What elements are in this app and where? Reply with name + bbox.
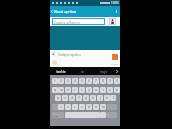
button[interactable]: z xyxy=(58,104,64,110)
button[interactable]: Emoji xyxy=(52,60,57,65)
button[interactable]: tenhle xyxy=(50,70,72,74)
staticText: Nová zpráva xyxy=(54,9,76,14)
button[interactable]: moje xyxy=(93,70,114,74)
staticText: e xyxy=(67,88,69,92)
button[interactable]: y xyxy=(86,87,92,93)
button[interactable]: 3 xyxy=(65,78,71,84)
staticText: q xyxy=(54,88,56,92)
button[interactable]: h xyxy=(90,95,96,101)
button[interactable]: i xyxy=(100,87,106,93)
button[interactable]: q xyxy=(52,87,58,93)
button[interactable]: n xyxy=(93,104,99,110)
staticText: k xyxy=(106,96,108,100)
staticText: l xyxy=(113,96,114,100)
button[interactable]: j xyxy=(97,95,103,101)
staticText: 4 xyxy=(74,79,76,83)
staticText: p xyxy=(116,88,118,92)
staticText: v xyxy=(81,105,83,109)
button[interactable]: l xyxy=(110,95,116,101)
button[interactable]: . xyxy=(100,112,106,118)
staticText: Sym xyxy=(53,114,58,117)
button[interactable]: o xyxy=(107,87,113,93)
button[interactable]: Back xyxy=(50,6,76,17)
button[interactable]: e xyxy=(65,87,71,93)
button[interactable]: d xyxy=(69,95,75,101)
staticText: 13:05 xyxy=(111,1,119,5)
staticText: . xyxy=(103,113,104,117)
staticText: c xyxy=(74,105,76,109)
staticText: u xyxy=(95,88,97,92)
staticText: b xyxy=(88,105,90,109)
staticText: o xyxy=(109,88,111,92)
staticText: g xyxy=(85,96,87,100)
button[interactable]: 8 xyxy=(100,78,106,84)
button[interactable]: s xyxy=(62,95,68,101)
staticText: j xyxy=(100,96,101,100)
staticText: 6 xyxy=(88,79,90,83)
button[interactable]: u xyxy=(93,87,99,93)
staticText: n xyxy=(95,105,97,109)
button[interactable]: 7 xyxy=(93,78,99,84)
button[interactable]: 2 xyxy=(58,78,64,84)
staticText: 8 xyxy=(102,79,104,83)
button[interactable]: Zadejte příjemce xyxy=(52,18,105,25)
button[interactable]: 5 xyxy=(79,78,85,84)
staticText: d xyxy=(71,96,73,100)
button[interactable]: v xyxy=(79,104,85,110)
button[interactable]: 4 xyxy=(72,78,78,84)
button[interactable]: Send xyxy=(112,54,118,60)
staticText: w xyxy=(60,88,63,92)
button[interactable]: a xyxy=(55,95,61,101)
button[interactable]: 9 xyxy=(107,78,113,84)
staticText: s xyxy=(64,96,66,100)
staticText: 9 xyxy=(109,79,111,83)
staticText: m xyxy=(102,105,105,109)
staticText: Zadejte zprávu xyxy=(58,52,81,56)
button[interactable]: x xyxy=(65,104,71,110)
button[interactable]: w xyxy=(58,87,64,93)
button[interactable]: se xyxy=(72,70,93,74)
staticText: f xyxy=(78,96,80,100)
staticText: r xyxy=(74,88,76,92)
button[interactable]: More suggestions xyxy=(114,67,120,76)
staticText: y xyxy=(88,88,90,92)
button[interactable]: b xyxy=(86,104,92,110)
button[interactable]: p xyxy=(114,87,120,93)
button[interactable]: m xyxy=(100,104,106,110)
button[interactable]: 6 xyxy=(86,78,92,84)
staticText: h xyxy=(92,96,94,100)
staticText: t xyxy=(81,88,83,92)
staticText: 2 xyxy=(60,79,62,83)
staticText: 0 xyxy=(116,79,118,83)
staticText: 7 xyxy=(95,79,97,83)
button[interactable]: Attach xyxy=(51,51,56,56)
staticText: 1 xyxy=(54,79,56,83)
staticText: z xyxy=(60,105,62,109)
button[interactable]: c xyxy=(72,104,78,110)
staticText: a xyxy=(57,96,59,100)
button[interactable]: f xyxy=(76,95,82,101)
button[interactable] xyxy=(65,112,100,118)
staticText: x xyxy=(67,105,69,109)
button[interactable]: g xyxy=(83,95,89,101)
staticText: Zadejte příjemce xyxy=(54,20,80,24)
button[interactable]: t xyxy=(79,87,85,93)
button[interactable]: k xyxy=(104,95,110,101)
staticText: 0/160 xyxy=(111,62,118,65)
staticText: 5 xyxy=(81,79,83,83)
button[interactable]: Sym xyxy=(52,112,58,118)
staticText: i xyxy=(103,88,104,92)
button[interactable]: 1 xyxy=(52,78,58,84)
button[interactable]: 0 xyxy=(114,78,120,84)
staticText: 3 xyxy=(67,79,69,83)
button[interactable]: More options xyxy=(113,6,120,17)
button[interactable]: Contacts xyxy=(109,18,116,25)
button[interactable]: r xyxy=(72,87,78,93)
